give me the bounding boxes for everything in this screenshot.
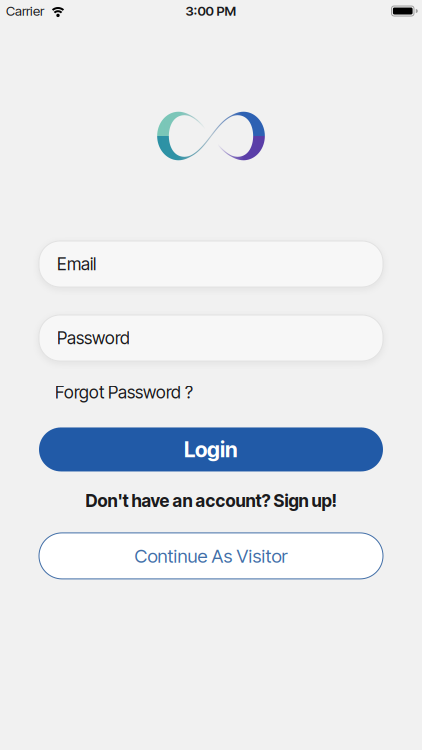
staticText: Email: [57, 254, 96, 274]
staticText: Login: [184, 437, 238, 462]
button[interactable]: Don't have an account? Sign up!: [85, 490, 336, 511]
button[interactable]: Email: [39, 241, 383, 287]
button[interactable]: Login: [39, 427, 383, 471]
button[interactable]: Password: [39, 315, 383, 361]
staticText: Continue As Visitor: [134, 545, 287, 567]
staticText: Password: [57, 328, 130, 348]
staticText: 3:00 PM: [185, 3, 236, 19]
button[interactable]: Continue As Visitor: [39, 533, 383, 579]
staticText: Forgot Password ?: [55, 382, 193, 402]
button[interactable]: Forgot Password ?: [55, 382, 193, 402]
staticText: Don't have an account? Sign up!: [85, 490, 336, 511]
staticText: Carrier: [6, 3, 44, 19]
